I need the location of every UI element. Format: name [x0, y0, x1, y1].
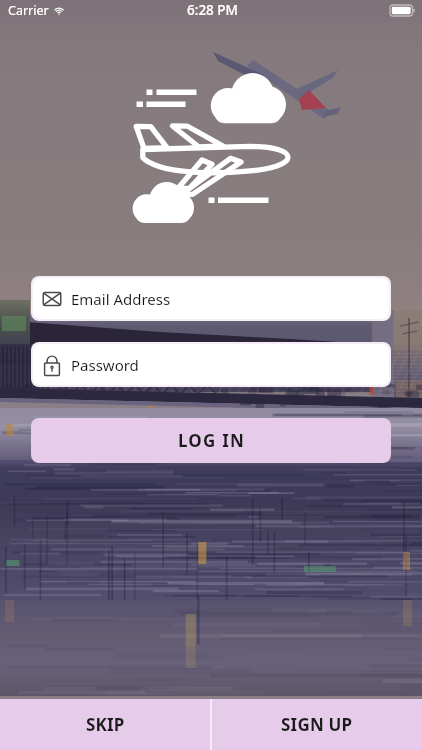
staticText: LOG IN: [178, 429, 245, 452]
button[interactable]: Email Address: [31, 276, 391, 321]
staticText: Password: [71, 355, 139, 375]
staticText: Carrier: [8, 2, 49, 19]
button[interactable]: SKIP: [0, 699, 210, 750]
staticText: SIGN UP: [281, 713, 353, 736]
button[interactable]: SIGN UP: [212, 699, 422, 750]
button[interactable]: LOG IN: [31, 418, 391, 463]
button[interactable]: Password: [31, 342, 391, 387]
staticText: Email Address: [71, 289, 171, 309]
staticText: SKIP: [86, 713, 125, 736]
staticText: 6:28 PM: [187, 1, 238, 19]
